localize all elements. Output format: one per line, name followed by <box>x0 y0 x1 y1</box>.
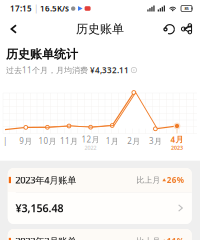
staticText: 历史账单 <box>76 22 124 36</box>
staticText: 2023年3月账单 <box>15 235 76 240</box>
staticText: | <box>32 3 40 14</box>
staticText: | <box>3 136 7 146</box>
staticText: 85 <box>184 6 188 11</box>
button[interactable]: Share <box>178 20 195 37</box>
staticText: 比上月 <box>136 175 160 185</box>
staticText: 16.5K/s <box>40 3 69 14</box>
staticText: 2月 <box>127 136 140 146</box>
staticText: ¥3,156.48 <box>15 201 63 215</box>
staticText: 12月 <box>82 134 100 145</box>
staticText: 10月 <box>38 136 56 146</box>
button[interactable]: Back <box>4 19 24 39</box>
button[interactable]: 2023年3月账单 <box>8 229 192 240</box>
staticText: 2023年4月账单 <box>15 174 76 186</box>
button[interactable]: 2023年4月账单 <box>8 168 192 224</box>
staticText: 11% <box>167 236 184 240</box>
button[interactable]: Customer service <box>161 20 178 37</box>
staticText: 历史账单统计 <box>6 47 78 62</box>
staticText: 26% <box>167 175 184 185</box>
staticText: 3月 <box>149 136 162 146</box>
staticText: 4月 <box>170 134 183 145</box>
staticText: 11月 <box>60 136 78 146</box>
staticText: 过去11个月，月均消费 <box>6 65 90 75</box>
staticText: 1月 <box>106 136 119 146</box>
staticText: ¥4,332.11 <box>90 65 129 75</box>
staticText: 比上月 <box>136 236 160 240</box>
staticText: 2022 <box>85 144 97 151</box>
staticText: 9月 <box>19 136 32 146</box>
staticText: 2023 <box>171 144 183 151</box>
staticText: 17:15 <box>10 3 32 14</box>
